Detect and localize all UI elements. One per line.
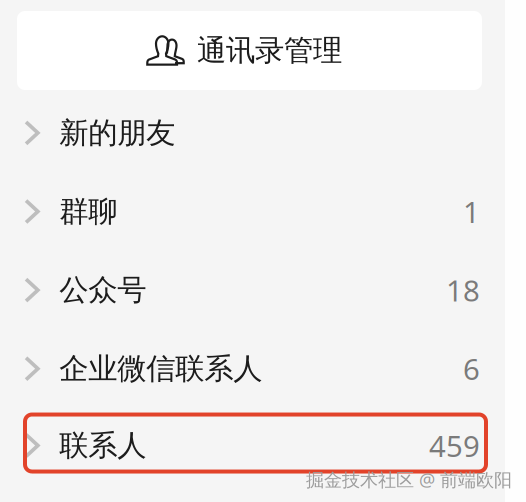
button[interactable]: 新的朋友 bbox=[0, 94, 505, 172]
staticText: 18 bbox=[446, 271, 480, 310]
button[interactable]: 公众号 bbox=[0, 251, 505, 329]
staticText: 1 bbox=[463, 192, 480, 231]
staticText: 6 bbox=[463, 349, 480, 388]
button[interactable]: 通讯录管理 bbox=[17, 11, 482, 90]
staticText: 掘金技术社区 @ 前端欧阳 bbox=[306, 467, 512, 492]
button[interactable]: 企业微信联系人 bbox=[0, 329, 505, 408]
button[interactable]: 联系人 bbox=[0, 406, 505, 485]
staticText: 企业微信联系人 bbox=[59, 351, 262, 387]
staticText: 群聊 bbox=[59, 193, 117, 229]
staticText: 联系人 bbox=[59, 427, 146, 463]
staticText: 通讯录管理 bbox=[197, 32, 342, 68]
staticText: 公众号 bbox=[59, 272, 146, 308]
staticText: 459 bbox=[429, 426, 480, 465]
staticText: 新的朋友 bbox=[59, 115, 175, 151]
button[interactable]: 群聊 bbox=[0, 172, 505, 251]
